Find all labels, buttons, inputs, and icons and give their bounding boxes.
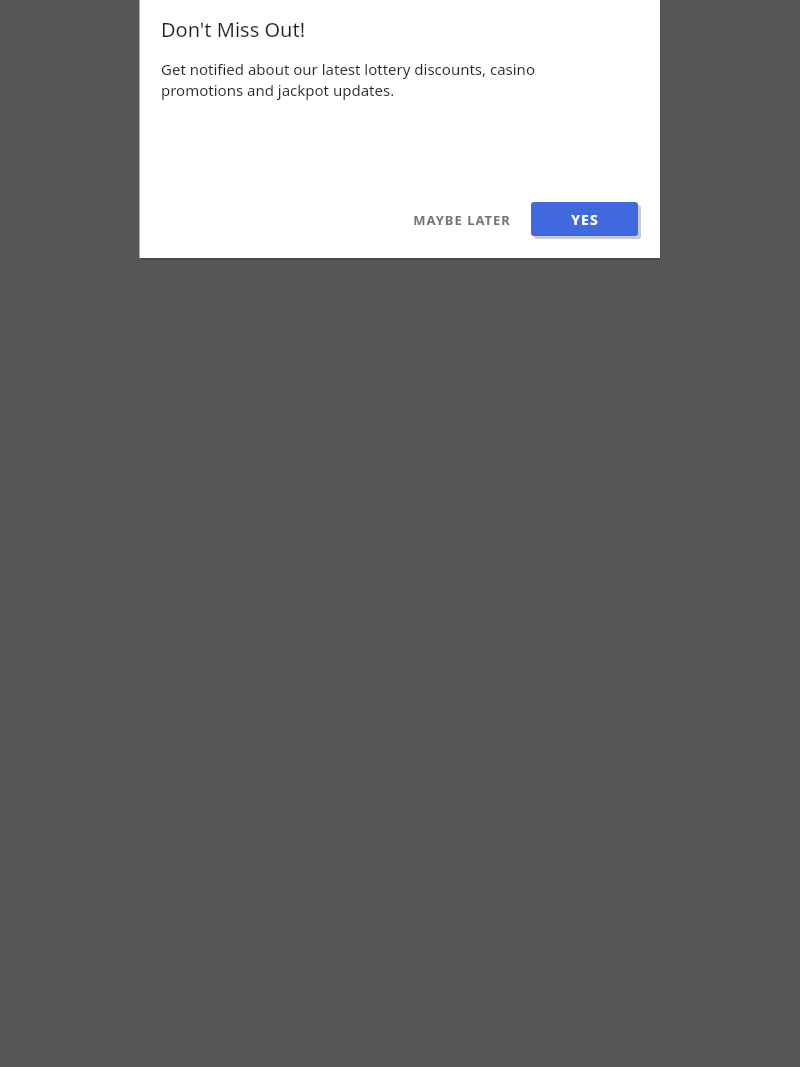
staticText: MAYBE LATER <box>413 211 511 229</box>
button[interactable]: MAYBE LATER <box>407 201 517 239</box>
staticText: YES <box>571 210 599 229</box>
button[interactable]: Yes, notify me <box>531 202 638 236</box>
staticText: Don't Miss Out! <box>161 16 306 43</box>
staticText: Get notified about our latest lottery di… <box>161 59 570 101</box>
